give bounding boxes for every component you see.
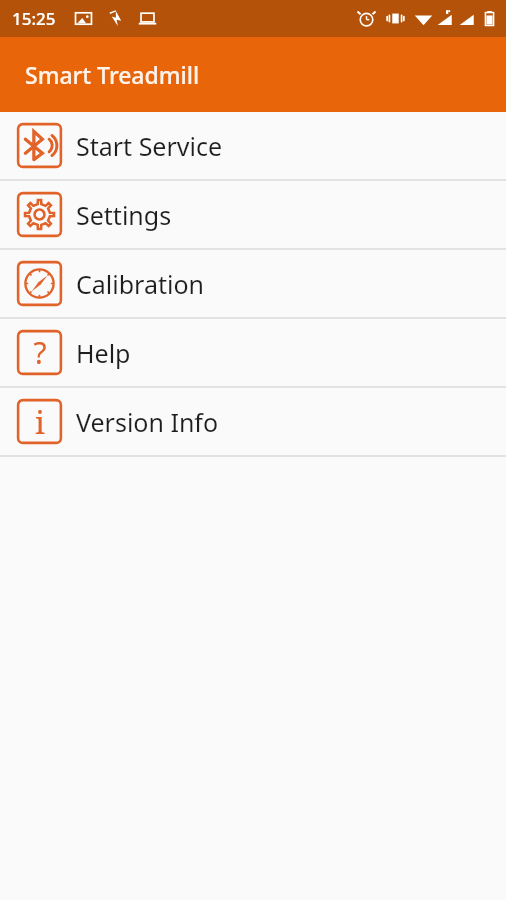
- button[interactable]: Start Service: [0, 112, 506, 179]
- button[interactable]: ?: [0, 319, 506, 386]
- staticText: Start Service: [76, 129, 223, 163]
- staticText: Version Info: [76, 405, 219, 439]
- staticText: i: [35, 401, 45, 443]
- staticText: Smart Treadmill: [25, 59, 200, 90]
- staticText: 15:25: [12, 7, 56, 30]
- staticText: ?: [33, 332, 47, 373]
- staticText: Help: [76, 336, 131, 370]
- button[interactable]: Calibration: [0, 250, 506, 317]
- staticText: Calibration: [76, 267, 205, 301]
- button[interactable]: Settings: [0, 181, 506, 248]
- button[interactable]: i: [0, 388, 506, 455]
- staticText: Settings: [76, 198, 172, 232]
